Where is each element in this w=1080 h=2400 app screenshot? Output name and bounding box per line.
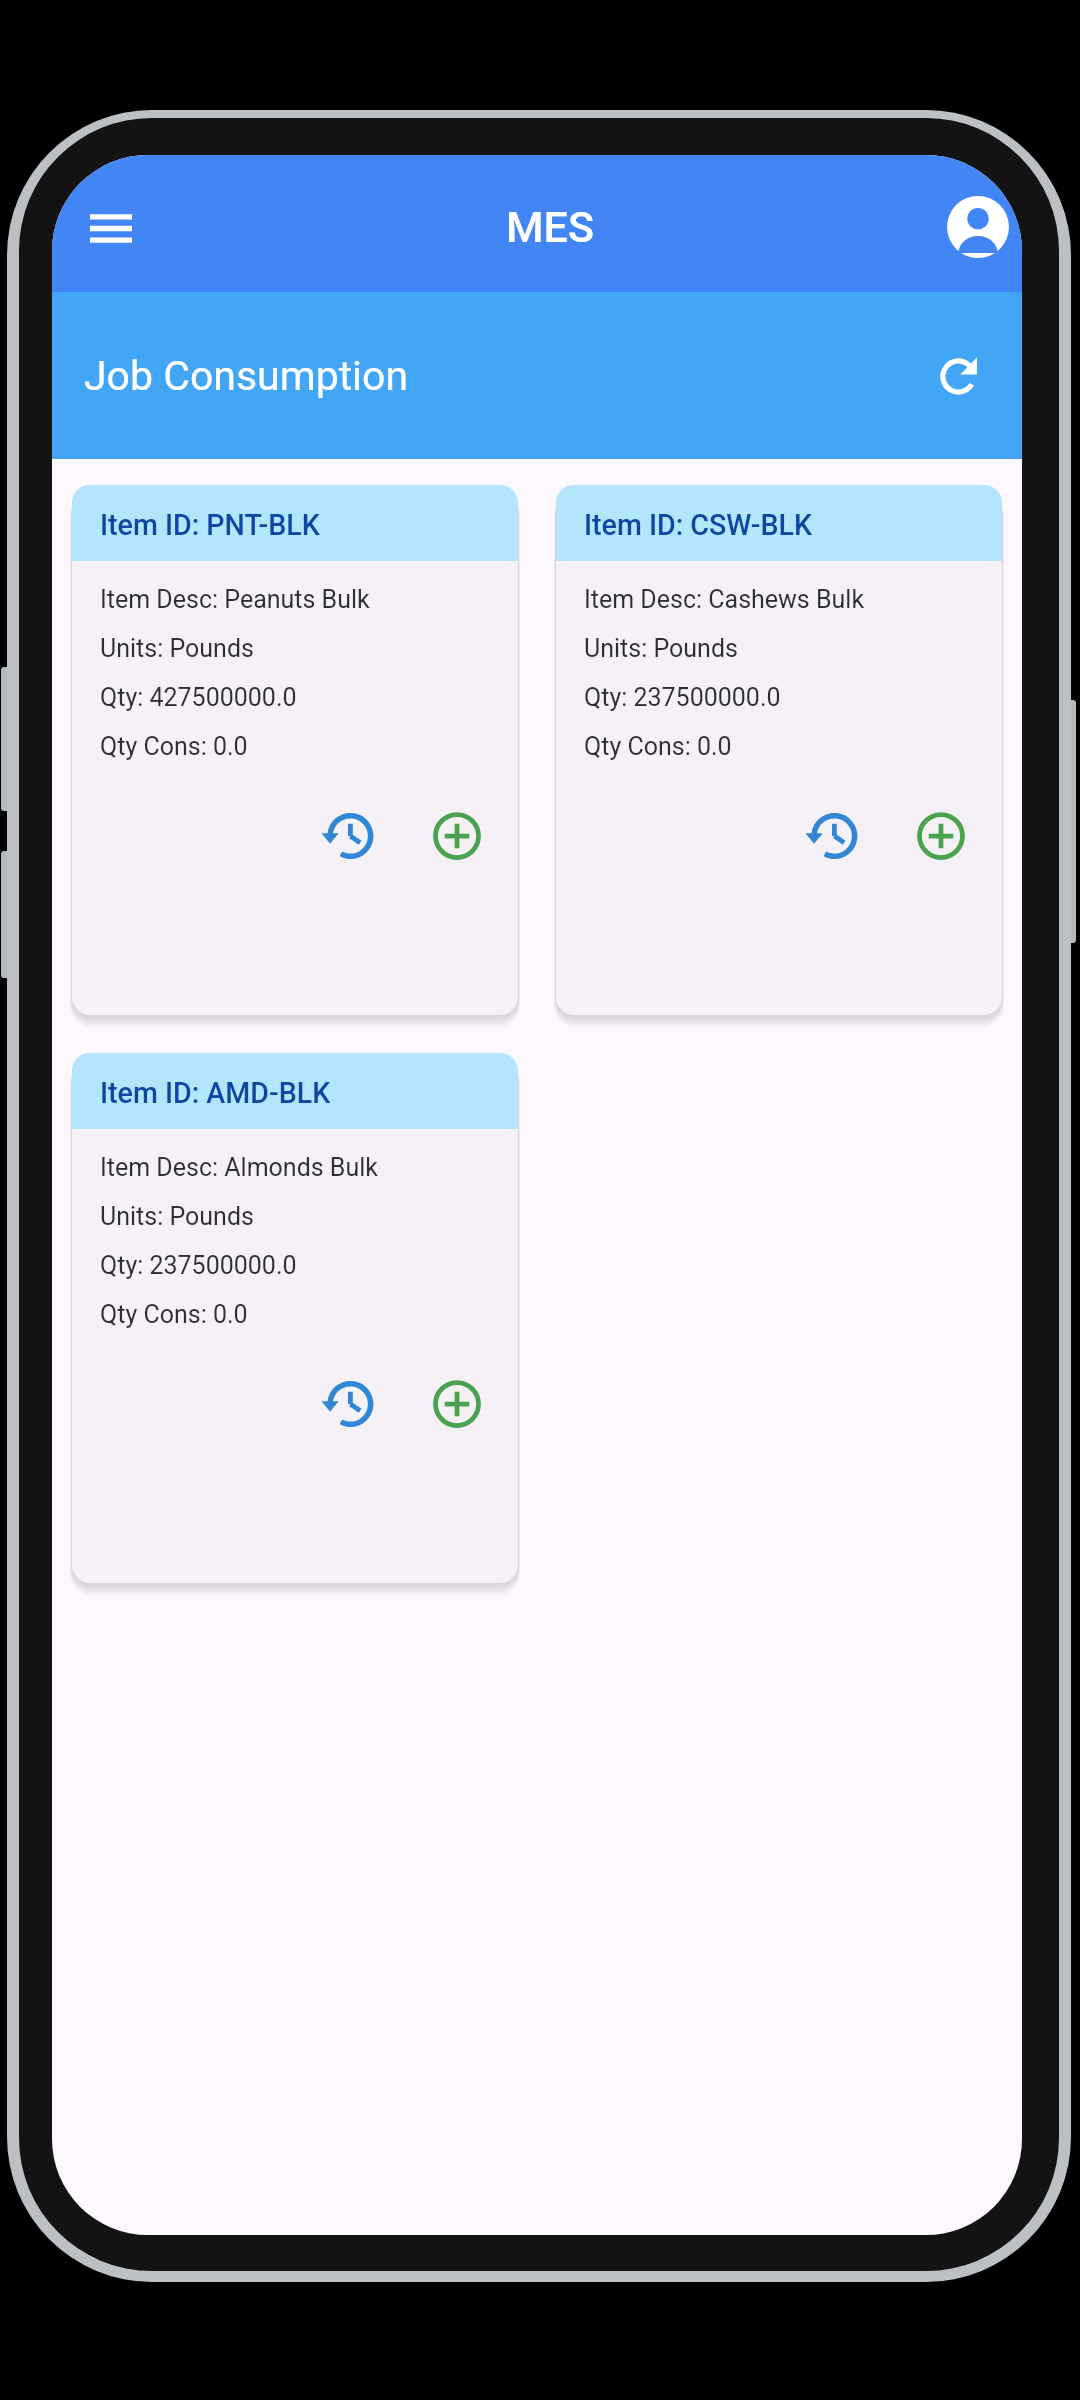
button[interactable]: Add consumption	[903, 798, 979, 874]
staticText: Qty Cons: 0.0	[584, 732, 732, 761]
button[interactable]: Item ID: PNT-BLK	[72, 485, 518, 1015]
staticText: MES	[506, 202, 594, 252]
button[interactable]: Item ID: CSW-BLK	[556, 485, 1002, 1015]
staticText: Qty Cons: 0.0	[100, 732, 248, 761]
staticText: Units: Pounds	[584, 634, 738, 663]
staticText: Item ID: CSW-BLK	[584, 508, 812, 542]
button[interactable]: Account	[926, 175, 1022, 279]
button[interactable]: Add consumption	[419, 798, 495, 874]
staticText: Qty Cons: 0.0	[100, 1300, 248, 1329]
button[interactable]: Add consumption	[419, 1366, 495, 1442]
button[interactable]: View consumption history	[309, 1366, 385, 1442]
staticText: Job Consumption	[84, 352, 409, 400]
button[interactable]: Open navigation menu	[58, 176, 163, 281]
staticText: Qty: 237500000.0	[584, 683, 781, 712]
button[interactable]: Item ID: AMD-BLK	[72, 1053, 518, 1583]
staticText: Qty: 427500000.0	[100, 683, 297, 712]
staticText: Units: Pounds	[100, 634, 254, 663]
staticText: Qty: 237500000.0	[100, 1251, 297, 1280]
staticText: Item Desc: Almonds Bulk	[100, 1153, 378, 1182]
button[interactable]: View consumption history	[793, 798, 869, 874]
button[interactable]: Refresh	[908, 328, 1004, 424]
staticText: Units: Pounds	[100, 1202, 254, 1231]
staticText: Item ID: AMD-BLK	[100, 1076, 331, 1110]
staticText: Item Desc: Peanuts Bulk	[100, 585, 370, 614]
staticText: Item ID: PNT-BLK	[100, 508, 320, 542]
button[interactable]: View consumption history	[309, 798, 385, 874]
staticText: Item Desc: Cashews Bulk	[584, 585, 865, 614]
